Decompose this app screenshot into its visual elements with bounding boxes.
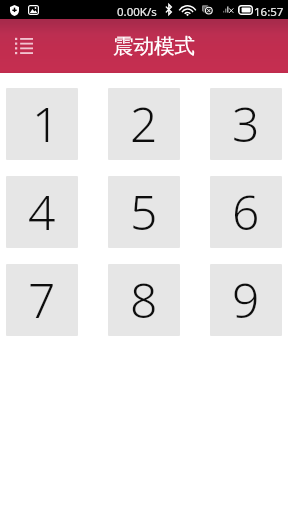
staticText: 3 [232, 91, 260, 156]
button[interactable]: 2 [108, 88, 180, 160]
staticText: 16:57 [254, 4, 284, 20]
staticText: 震动模式 [113, 33, 195, 59]
staticText: 4 [28, 179, 56, 244]
staticText: 7 [28, 267, 56, 332]
staticText: 9 [232, 267, 260, 332]
staticText: 8 [130, 267, 158, 332]
button[interactable]: 4 [6, 176, 78, 248]
staticText: 2 [130, 91, 158, 156]
staticText: 6 [232, 179, 260, 244]
button[interactable]: 5 [108, 176, 180, 248]
button[interactable]: 9 [210, 264, 282, 336]
button[interactable]: 1 [6, 88, 78, 160]
staticText: 0.00K/s [117, 4, 157, 20]
button[interactable]: 6 [210, 176, 282, 248]
button[interactable]: 3 [210, 88, 282, 160]
button[interactable]: 8 [108, 264, 180, 336]
staticText: 1 [32, 91, 60, 156]
button[interactable]: 7 [6, 264, 78, 336]
button[interactable]: Menu [7, 29, 41, 63]
staticText: 5 [130, 179, 158, 244]
